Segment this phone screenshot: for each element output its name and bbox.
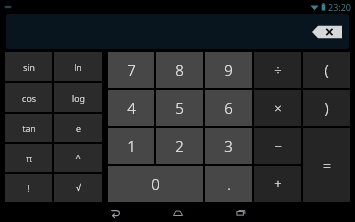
staticText: −	[274, 137, 282, 155]
button[interactable]: +	[254, 166, 301, 202]
button[interactable]: 2	[156, 128, 203, 164]
staticText: ×	[274, 99, 282, 117]
button[interactable]: cos	[5, 83, 52, 112]
staticText: π	[26, 152, 32, 164]
button[interactable]: 4	[108, 90, 154, 126]
button[interactable]: 5	[156, 90, 203, 126]
staticText: e	[76, 122, 81, 134]
button[interactable]: 6	[205, 90, 252, 126]
button[interactable]: Recent apps	[231, 203, 251, 222]
staticText: sin	[23, 61, 35, 73]
staticText: 6	[224, 98, 233, 118]
button[interactable]: e	[54, 114, 102, 142]
staticText: 1	[127, 136, 136, 156]
staticText: 4	[127, 98, 136, 118]
staticText: √	[76, 183, 81, 193]
button[interactable]: 7	[108, 52, 154, 88]
button[interactable]: tan	[5, 114, 52, 142]
button[interactable]: .	[205, 166, 252, 202]
button[interactable]: =	[303, 128, 350, 202]
staticText: 2	[175, 136, 184, 156]
button[interactable]: 0	[108, 166, 203, 202]
button[interactable]: Home	[168, 203, 188, 222]
staticText: 9	[224, 60, 233, 80]
button[interactable]: Delete	[6, 14, 349, 49]
button[interactable]: 9	[205, 52, 252, 88]
button[interactable]: π	[5, 144, 52, 172]
button[interactable]: ln	[54, 52, 102, 81]
button[interactable]: log	[54, 83, 102, 112]
staticText: !	[27, 182, 30, 194]
staticText: tan	[22, 122, 36, 134]
staticText: )	[324, 98, 329, 118]
button[interactable]: (	[303, 52, 350, 88]
button[interactable]: √	[54, 174, 102, 202]
button[interactable]: 3	[205, 128, 252, 164]
button[interactable]: ÷	[254, 52, 301, 88]
staticText: log	[72, 92, 85, 104]
button[interactable]: !	[5, 174, 52, 202]
staticText: 3	[224, 136, 233, 156]
staticText: =	[323, 156, 331, 175]
staticText: +	[274, 175, 282, 193]
staticText: 8	[175, 60, 184, 80]
button[interactable]: Delete	[312, 25, 342, 39]
button[interactable]: Back	[105, 203, 125, 222]
button[interactable]: ×	[254, 90, 301, 126]
staticText: .	[227, 174, 231, 194]
staticText: ln	[74, 61, 82, 73]
staticText: 5	[175, 98, 184, 118]
button[interactable]: sin	[5, 52, 52, 81]
staticText: 0	[151, 174, 160, 194]
button[interactable]: ^	[54, 144, 102, 172]
staticText: ÷	[274, 61, 282, 79]
staticText: 7	[127, 60, 136, 80]
staticText: cos	[22, 92, 36, 104]
staticText: 23:20	[328, 1, 352, 13]
button[interactable]: )	[303, 90, 350, 126]
button[interactable]: 8	[156, 52, 203, 88]
staticText: ^	[75, 152, 81, 164]
button[interactable]: −	[254, 128, 301, 164]
staticText: (	[324, 60, 329, 80]
button[interactable]: 1	[108, 128, 154, 164]
